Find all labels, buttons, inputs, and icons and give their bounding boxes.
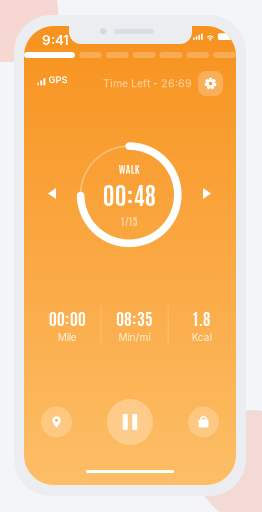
staticText: 08:35 [116,307,153,328]
staticText: 1.8 [193,307,211,328]
staticText: Mile [58,331,77,343]
button[interactable]: Settings [198,71,223,96]
staticText: WALK [119,162,140,175]
staticText: 1/15 [121,214,138,228]
staticText: 00:48 [103,178,156,209]
staticText: 00:00 [49,307,86,328]
staticText: Min/mi [118,331,150,343]
staticText: GPS [48,74,67,85]
button[interactable]: Pause [107,399,153,445]
staticText: Kcal [192,331,212,343]
button[interactable]: Previous interval [41,181,63,206]
button[interactable]: Location [41,406,72,437]
staticText: 9:41 [42,32,69,48]
button[interactable]: Lock [188,406,219,437]
button[interactable]: Next interval [196,181,218,206]
staticText: Time Left - 26:69 [103,77,192,90]
